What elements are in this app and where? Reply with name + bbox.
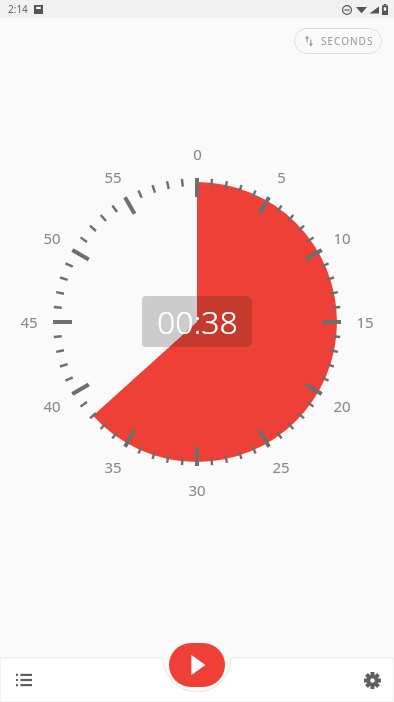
button[interactable]: Presets list [8, 664, 40, 696]
staticText: 5 [277, 167, 286, 187]
button[interactable]: Settings [356, 664, 388, 696]
staticText: 25 [272, 457, 290, 477]
staticText: 55 [104, 167, 122, 187]
staticText: SECONDS [321, 34, 374, 48]
staticText: 40 [43, 396, 61, 416]
staticText: 00:38 [157, 300, 238, 344]
staticText: 2:14 [8, 2, 28, 16]
staticText: 10 [333, 228, 351, 248]
staticText: 30 [188, 480, 206, 500]
staticText: 50 [43, 228, 61, 248]
staticText: 35 [104, 457, 122, 477]
staticText: 20 [333, 396, 351, 416]
staticText: 45 [20, 312, 38, 332]
staticText: 15 [356, 312, 374, 332]
staticText: 0 [193, 144, 202, 164]
button[interactable]: Start timer [169, 643, 225, 687]
button[interactable]: SECONDS [294, 28, 382, 54]
